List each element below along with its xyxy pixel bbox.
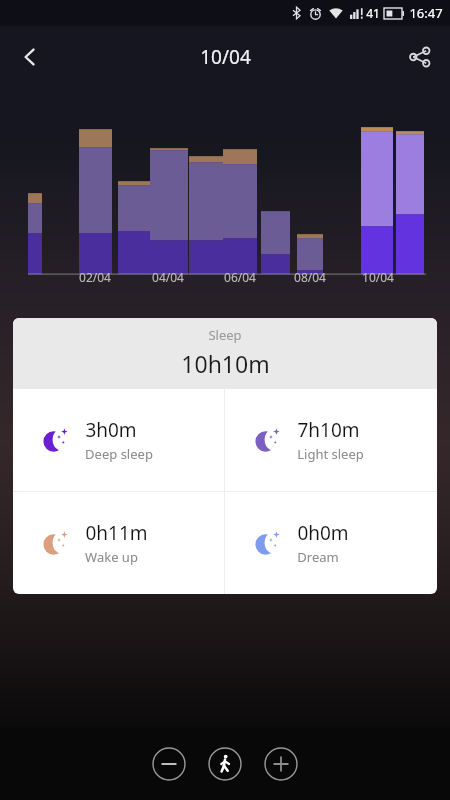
staticText: 10/04 bbox=[200, 44, 251, 70]
button[interactable]: 3h0m bbox=[13, 389, 224, 491]
button[interactable]: Back bbox=[6, 33, 54, 81]
staticText: 0h0m bbox=[297, 520, 349, 546]
staticText: 08/04 bbox=[294, 269, 326, 285]
staticText: Sleep bbox=[208, 326, 242, 344]
button[interactable]: Decrease bbox=[152, 747, 186, 781]
staticText: Deep sleep bbox=[85, 445, 153, 463]
staticText: 0h11m bbox=[85, 520, 148, 546]
button[interactable]: Increase bbox=[264, 747, 298, 781]
staticText: 16:47 bbox=[409, 4, 443, 22]
staticText: 10h10m bbox=[181, 348, 270, 379]
button[interactable]: 0h11m bbox=[13, 492, 224, 594]
staticText: 06/04 bbox=[224, 269, 256, 285]
staticText: Light sleep bbox=[297, 445, 364, 463]
staticText: 02/04 bbox=[79, 269, 111, 285]
button[interactable]: 7h10m bbox=[225, 389, 437, 491]
button[interactable]: 0h0m bbox=[225, 492, 437, 594]
staticText: 41 bbox=[366, 5, 380, 21]
staticText: Wake up bbox=[85, 548, 138, 566]
button[interactable]: Activity bbox=[208, 747, 242, 781]
staticText: 10/04 bbox=[362, 269, 394, 285]
staticText: 7h10m bbox=[297, 417, 360, 443]
staticText: Dream bbox=[297, 548, 339, 566]
staticText: 3h0m bbox=[85, 417, 137, 443]
staticText: 04/04 bbox=[152, 269, 184, 285]
button[interactable]: Share bbox=[396, 33, 444, 81]
